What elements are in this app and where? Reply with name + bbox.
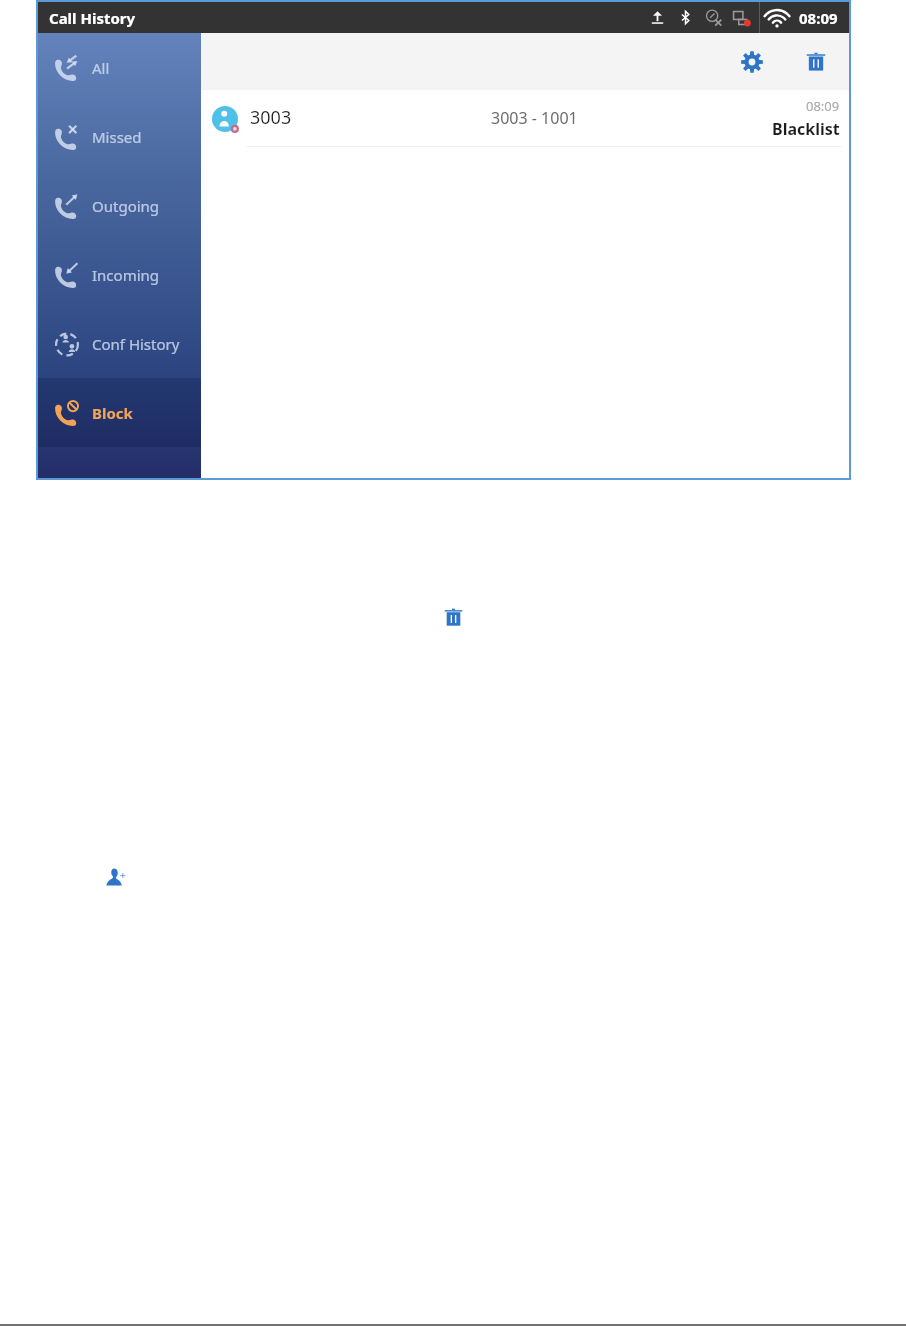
staticText: Block [92, 403, 133, 423]
button[interactable]: Delete [443, 607, 464, 628]
button[interactable]: Conf History [38, 309, 201, 378]
staticText: All [92, 58, 110, 78]
button[interactable]: Delete all [796, 42, 836, 82]
staticText: 3003 - 1001 [491, 107, 578, 129]
button[interactable]: All [38, 33, 201, 102]
staticText: Incoming [92, 265, 160, 285]
staticText: 08:09 [799, 8, 838, 28]
staticText: Missed [92, 127, 142, 147]
button[interactable]: Missed [38, 102, 201, 171]
button[interactable]: Settings [732, 42, 772, 82]
staticText: Blacklist [772, 118, 840, 140]
staticText: Call History [49, 8, 136, 28]
staticText: Outgoing [92, 196, 160, 216]
button[interactable]: Add contact [106, 867, 126, 887]
button[interactable]: Block [38, 378, 201, 447]
staticText: 3003 [250, 105, 292, 130]
staticText: 08:09 [806, 97, 840, 115]
button[interactable]: Incoming [38, 240, 201, 309]
button[interactable]: Outgoing [38, 171, 201, 240]
button[interactable]: 3003 [201, 90, 849, 147]
staticText: Conf History [92, 334, 180, 354]
